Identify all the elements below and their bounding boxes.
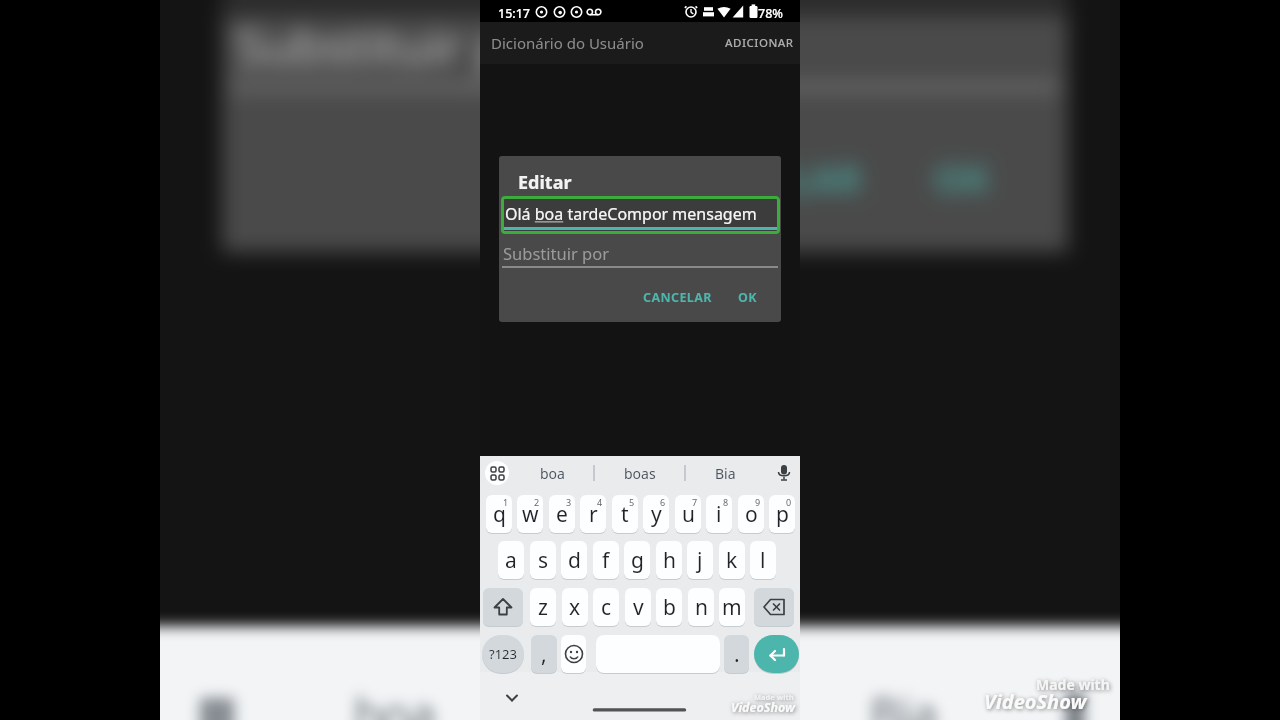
- staticText: Dicionário do Usuário: [491, 33, 644, 53]
- staticText: z: [538, 593, 548, 622]
- staticText: 4: [597, 496, 603, 508]
- button[interactable]: ?123: [482, 635, 524, 673]
- button[interactable]: m: [719, 588, 745, 626]
- staticText: f: [602, 546, 610, 575]
- button[interactable]: l: [750, 541, 776, 579]
- staticText: m: [722, 593, 742, 622]
- staticText: Made with: [1036, 675, 1110, 694]
- button[interactable]: [754, 635, 799, 673]
- button[interactable]: p: [769, 495, 795, 533]
- button[interactable]: b: [656, 588, 682, 626]
- staticText: Substituir por: [503, 242, 609, 264]
- button[interactable]: Bia: [705, 461, 746, 486]
- staticText: o: [745, 500, 758, 529]
- staticText: e: [556, 500, 568, 529]
- button[interactable]: x: [562, 588, 588, 626]
- button[interactable]: i: [706, 495, 732, 533]
- staticText: x: [569, 593, 581, 622]
- staticText: .: [734, 640, 740, 669]
- button[interactable]: a: [498, 541, 524, 579]
- staticText: Substituir po: [236, 12, 537, 80]
- staticText: 8: [723, 496, 729, 508]
- staticText: s: [538, 546, 549, 575]
- staticText: g: [631, 546, 644, 575]
- button[interactable]: ,: [531, 635, 557, 673]
- button[interactable]: r: [580, 495, 606, 533]
- staticText: boa: [354, 682, 436, 720]
- button[interactable]: t: [612, 495, 638, 533]
- staticText: 3: [566, 496, 572, 508]
- staticText: 1: [503, 496, 509, 508]
- staticText: v: [633, 593, 644, 622]
- button[interactable]: [500, 688, 524, 712]
- button[interactable]: [561, 635, 586, 673]
- staticText: u: [682, 500, 695, 529]
- staticText: p: [776, 500, 789, 529]
- button[interactable]: OK: [727, 284, 767, 310]
- staticText: q: [493, 500, 506, 529]
- button[interactable]: d: [561, 541, 587, 579]
- button[interactable]: s: [530, 541, 556, 579]
- button[interactable]: k: [719, 541, 745, 579]
- staticText: OK: [934, 152, 990, 204]
- staticText: a: [505, 546, 517, 575]
- button[interactable]: u: [675, 495, 701, 533]
- staticText: n: [695, 593, 708, 622]
- button[interactable]: e: [549, 495, 575, 533]
- button[interactable]: ADICIONAR: [725, 35, 794, 51]
- button[interactable]: h: [656, 541, 682, 579]
- button[interactable]: v: [625, 588, 651, 626]
- button[interactable]: z: [530, 588, 556, 626]
- staticText: VideoShow: [731, 699, 795, 716]
- staticText: CANCELAR: [662, 152, 862, 204]
- button[interactable]: g: [624, 541, 650, 579]
- button[interactable]: [754, 588, 794, 626]
- button[interactable]: q: [486, 495, 512, 533]
- button[interactable]: o: [738, 495, 764, 533]
- button[interactable]: CANCELAR: [637, 284, 717, 310]
- button[interactable]: y: [643, 495, 669, 533]
- staticText: d: [568, 546, 581, 575]
- staticText: boa: [540, 464, 565, 483]
- staticText: ADICIONAR: [725, 35, 794, 51]
- button[interactable]: w: [517, 495, 543, 533]
- staticText: r: [589, 500, 598, 529]
- button[interactable]: .: [724, 635, 749, 673]
- staticText: 78%: [758, 5, 783, 22]
- button[interactable]: [483, 588, 523, 626]
- staticText: h: [663, 546, 676, 575]
- staticText: ?123: [489, 645, 517, 663]
- staticText: Olá boa tardeCompor mensagem: [505, 203, 757, 225]
- staticText: Bia: [715, 464, 736, 483]
- button[interactable]: j: [687, 541, 713, 579]
- staticText: VideoShow: [984, 688, 1087, 715]
- staticText: ,: [541, 640, 547, 669]
- staticText: l: [760, 546, 766, 575]
- staticText: t: [621, 500, 629, 529]
- staticText: Editar: [518, 170, 572, 195]
- button[interactable]: boa: [532, 461, 573, 486]
- staticText: c: [601, 593, 612, 622]
- staticText: Made with: [754, 692, 794, 702]
- button[interactable]: [772, 461, 796, 485]
- staticText: i: [716, 500, 722, 529]
- staticText: y: [651, 500, 662, 529]
- staticText: 6: [660, 496, 666, 508]
- button[interactable]: boas: [619, 461, 660, 486]
- button[interactable]: c: [593, 588, 619, 626]
- button[interactable]: Dicionário do Usuário: [491, 33, 644, 53]
- staticText: CANCELAR: [643, 289, 712, 306]
- staticText: w: [522, 500, 539, 529]
- button[interactable]: n: [688, 588, 714, 626]
- staticText: OK: [738, 289, 757, 306]
- staticText: b: [663, 593, 676, 622]
- staticText: 0: [786, 496, 792, 508]
- staticText: boas: [624, 464, 656, 483]
- staticText: Bia: [870, 682, 938, 720]
- button[interactable]: f: [593, 541, 619, 579]
- staticText: j: [697, 546, 703, 575]
- button[interactable]: [485, 461, 509, 485]
- staticText: 15:17: [498, 5, 531, 22]
- staticText: 5: [629, 496, 635, 508]
